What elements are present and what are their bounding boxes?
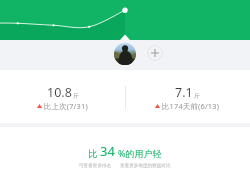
staticText: %的用户轻 <box>118 147 162 159</box>
button[interactable]: 比174天前(6/13) <box>125 101 250 111</box>
button[interactable]: Add record <box>147 45 163 61</box>
staticText: 斤 <box>194 92 200 100</box>
button[interactable]: 比 <box>0 142 250 160</box>
staticText: 查看更多维度的数据对比 <box>120 163 171 169</box>
staticText: 比上次(7/31) <box>44 101 88 111</box>
staticText: 可查看更多排名 <box>79 163 112 169</box>
button[interactable]: 10.8 <box>0 84 125 101</box>
staticText: 比174天前(6/13) <box>162 101 220 111</box>
staticText: 斤 <box>73 92 79 100</box>
button[interactable]: Profile photo <box>114 43 136 65</box>
button[interactable]: 7.1 <box>125 84 250 101</box>
staticText: 7.1 <box>175 84 193 101</box>
staticText: 10.8 <box>47 84 72 101</box>
staticText: 34 <box>100 142 115 160</box>
button[interactable]: 比上次(7/31) <box>0 101 125 111</box>
staticText: 比 <box>88 148 97 159</box>
